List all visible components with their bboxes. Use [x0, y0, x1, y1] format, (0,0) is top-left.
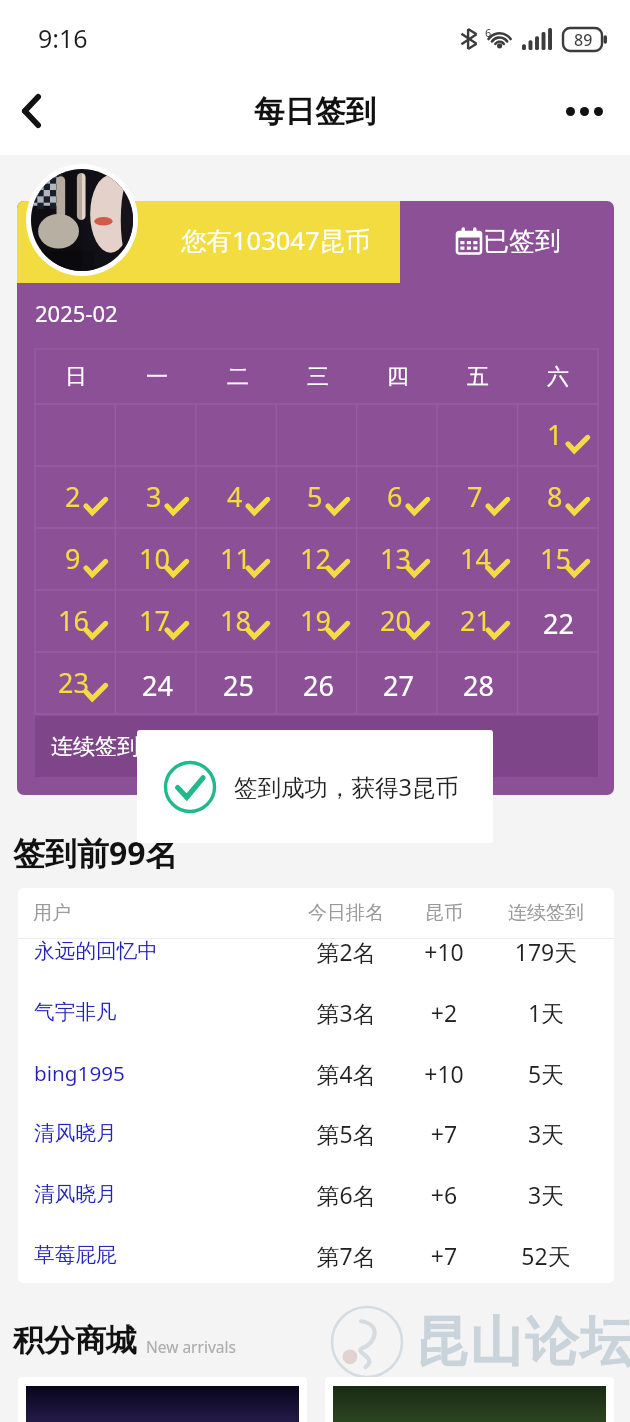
staticText: +7: [414, 1240, 474, 1271]
staticText: 25: [223, 667, 254, 704]
button[interactable]: 15: [528, 533, 588, 585]
staticText: 用户: [33, 901, 71, 925]
staticText: 3天: [502, 1118, 590, 1149]
button[interactable]: 11: [208, 533, 268, 585]
staticText: 52天: [502, 1240, 590, 1271]
staticText: 连续签到: [51, 733, 139, 761]
button[interactable]: 草莓屁屁: [18, 1225, 614, 1283]
staticText: 23: [58, 664, 89, 701]
button[interactable]: 清风晓月: [18, 1103, 614, 1163]
staticText: 今日排名: [305, 901, 387, 925]
staticText: 3天: [502, 1179, 590, 1210]
staticText: 1: [547, 416, 563, 453]
button[interactable]: More options: [550, 78, 618, 144]
button[interactable]: 20: [368, 595, 428, 647]
staticText: 12: [300, 540, 331, 577]
button[interactable]: 气宇非凡: [18, 982, 614, 1042]
button[interactable]: 2: [46, 471, 106, 523]
staticText: 第2名: [300, 938, 392, 967]
staticText: 5: [307, 478, 323, 515]
staticText: 清风晓月: [34, 1181, 117, 1207]
staticText: 22: [543, 605, 574, 642]
staticText: 6: [387, 478, 403, 515]
staticText: +6: [414, 1179, 474, 1210]
staticText: New arrivals: [146, 1336, 236, 1357]
button[interactable]: Avatar: [31, 169, 133, 271]
button[interactable]: 25: [208, 657, 268, 709]
button[interactable]: 18: [208, 595, 268, 647]
staticText: 5天: [502, 1058, 590, 1089]
staticText: 89: [574, 29, 593, 51]
staticText: 第5名: [300, 1118, 392, 1149]
button[interactable]: 已签到: [457, 225, 561, 258]
staticText: 19: [300, 602, 331, 639]
staticText: 3: [146, 478, 162, 515]
staticText: 27: [383, 667, 414, 704]
staticText: 永远的回忆中: [34, 938, 159, 964]
staticText: 已签到: [483, 225, 561, 258]
staticText: 积分商城: [13, 1321, 137, 1360]
button[interactable]: 永远的回忆中: [18, 938, 614, 981]
staticText: 26: [303, 667, 334, 704]
staticText: +10: [414, 1058, 474, 1089]
button[interactable]: [333, 1386, 606, 1422]
button[interactable]: 6: [368, 471, 428, 523]
button[interactable]: 9: [46, 533, 106, 585]
staticText: 签到成功，获得3昆币: [234, 771, 459, 803]
button[interactable]: 21: [448, 595, 508, 647]
button[interactable]: 10: [127, 533, 187, 585]
staticText: 五: [467, 363, 489, 391]
staticText: 2025-02: [35, 298, 118, 328]
button[interactable]: 5: [288, 471, 348, 523]
staticText: 签到前99名: [13, 831, 178, 875]
staticText: 一: [146, 363, 168, 391]
button[interactable]: 17: [127, 595, 187, 647]
staticText: 179天: [502, 938, 590, 967]
button[interactable]: 28: [448, 657, 508, 709]
button[interactable]: 22: [528, 595, 588, 647]
button[interactable]: 14: [448, 533, 508, 585]
staticText: 17: [139, 602, 170, 639]
staticText: +7: [414, 1118, 474, 1149]
staticText: 6: [485, 25, 492, 40]
button[interactable]: 4: [208, 471, 268, 523]
button[interactable]: 19: [288, 595, 348, 647]
button[interactable]: 23: [46, 657, 106, 709]
staticText: 21: [460, 602, 491, 639]
button[interactable]: 7: [448, 471, 508, 523]
button[interactable]: Back: [0, 78, 62, 144]
staticText: 14: [460, 540, 491, 577]
staticText: 每日签到: [254, 93, 376, 131]
staticText: 第4名: [300, 1058, 392, 1089]
staticText: 28: [463, 667, 494, 704]
button[interactable]: 13: [368, 533, 428, 585]
button[interactable]: 16: [46, 595, 106, 647]
button[interactable]: 清风晓月: [18, 1164, 614, 1224]
staticText: 连续签到: [505, 901, 587, 925]
button[interactable]: 26: [288, 657, 348, 709]
staticText: 昆山论坛: [414, 1309, 630, 1376]
staticText: 气宇非凡: [34, 999, 117, 1025]
button[interactable]: 8: [528, 471, 588, 523]
staticText: +2: [414, 997, 474, 1028]
staticText: +10: [414, 938, 474, 967]
staticText: 日: [65, 363, 87, 391]
staticText: 7: [467, 478, 483, 515]
staticText: 六: [547, 363, 569, 391]
staticText: 20: [380, 602, 411, 639]
staticText: 9: [65, 540, 81, 577]
button[interactable]: bing1995: [18, 1043, 614, 1103]
staticText: bing1995: [34, 1059, 125, 1087]
staticText: 9:16: [38, 21, 88, 55]
button[interactable]: [26, 1386, 299, 1422]
staticText: 三: [307, 363, 329, 391]
staticText: 13: [380, 540, 411, 577]
staticText: 15: [540, 540, 571, 577]
button[interactable]: 27: [368, 657, 428, 709]
button[interactable]: 12: [288, 533, 348, 585]
button[interactable]: 1: [528, 409, 588, 461]
staticText: 四: [387, 363, 409, 391]
button[interactable]: 3: [127, 471, 187, 523]
button[interactable]: 24: [127, 657, 187, 709]
staticText: 11: [220, 540, 251, 577]
